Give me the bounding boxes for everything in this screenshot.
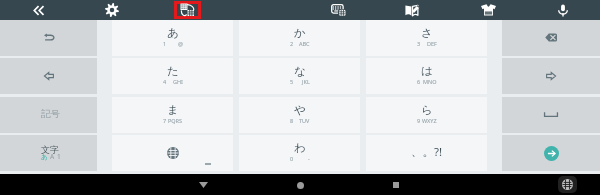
staticText: 、。?!	[411, 144, 443, 160]
button[interactable]: Backspace	[502, 20, 600, 56]
button[interactable]: Collapse keyboard	[20, 0, 56, 20]
staticText: な	[294, 64, 306, 78]
button[interactable]: Switch language	[112, 135, 233, 171]
staticText: た	[167, 64, 179, 78]
staticText: -	[308, 155, 310, 162]
staticText: ABC	[299, 40, 310, 47]
staticText: か	[294, 26, 306, 40]
staticText: WXYZ	[422, 117, 437, 124]
staticText: わ	[294, 141, 306, 155]
button[interactable]: Enter	[502, 135, 600, 171]
button[interactable]: Dictionary	[394, 0, 430, 20]
staticText: PQRS	[168, 117, 183, 124]
button[interactable]: Symbols	[0, 97, 97, 133]
staticText: 2	[290, 40, 294, 47]
button[interactable]: は	[366, 58, 487, 94]
button[interactable]: さ	[366, 20, 487, 56]
button[interactable]: Change input mode	[0, 135, 97, 171]
staticText: JKL	[302, 78, 310, 85]
staticText: @	[178, 40, 183, 47]
button[interactable]: Undo	[0, 20, 97, 56]
button[interactable]: Switch keyboard layout	[177, 4, 198, 16]
staticText: 7	[163, 117, 167, 124]
button[interactable]: Space	[502, 97, 600, 133]
staticText: 3	[417, 40, 421, 47]
button[interactable]: Home	[284, 174, 316, 195]
staticText: あ	[167, 26, 179, 40]
button[interactable]: ま	[112, 97, 233, 133]
staticText: A	[50, 152, 55, 161]
staticText: や	[294, 103, 306, 117]
staticText: 文字	[41, 144, 59, 155]
staticText: 9	[417, 117, 421, 124]
staticText: 1	[57, 152, 61, 161]
staticText: ま	[167, 103, 179, 117]
staticText: あ	[41, 153, 48, 161]
staticText: DEF	[427, 40, 437, 47]
staticText: 6	[417, 78, 421, 85]
button[interactable]: ら	[366, 97, 487, 133]
staticText: 0	[290, 155, 294, 162]
button[interactable]: Settings	[94, 0, 130, 20]
button[interactable]: Cursor right	[502, 58, 600, 94]
button[interactable]: あ	[112, 20, 233, 56]
button[interactable]: Change keyboard	[558, 176, 577, 193]
staticText: ら	[421, 103, 433, 117]
button[interactable]: な	[239, 58, 360, 94]
staticText: 8	[290, 117, 294, 124]
button[interactable]: か	[239, 20, 360, 56]
button[interactable]: や	[239, 97, 360, 133]
staticText: MNO	[423, 78, 437, 85]
staticText: さ	[421, 26, 433, 40]
button[interactable]: わ	[239, 135, 360, 171]
staticText: 記号	[41, 108, 60, 120]
staticText: は	[421, 64, 433, 78]
button[interactable]: Theme	[470, 0, 506, 20]
button[interactable]: Recents	[380, 174, 412, 195]
staticText: TUV	[299, 117, 310, 124]
staticText: 5	[290, 78, 294, 85]
staticText: 4	[163, 78, 167, 85]
button[interactable]: One-hand keyboard	[320, 0, 356, 20]
button[interactable]: 、。?!	[366, 135, 487, 171]
staticText: 1	[163, 40, 167, 47]
staticText: GHI	[173, 78, 183, 85]
button[interactable]: た	[112, 58, 233, 94]
button[interactable]: Cursor left	[0, 58, 97, 94]
button[interactable]: Voice input	[545, 0, 581, 20]
button[interactable]: Hide keyboard	[187, 174, 219, 195]
